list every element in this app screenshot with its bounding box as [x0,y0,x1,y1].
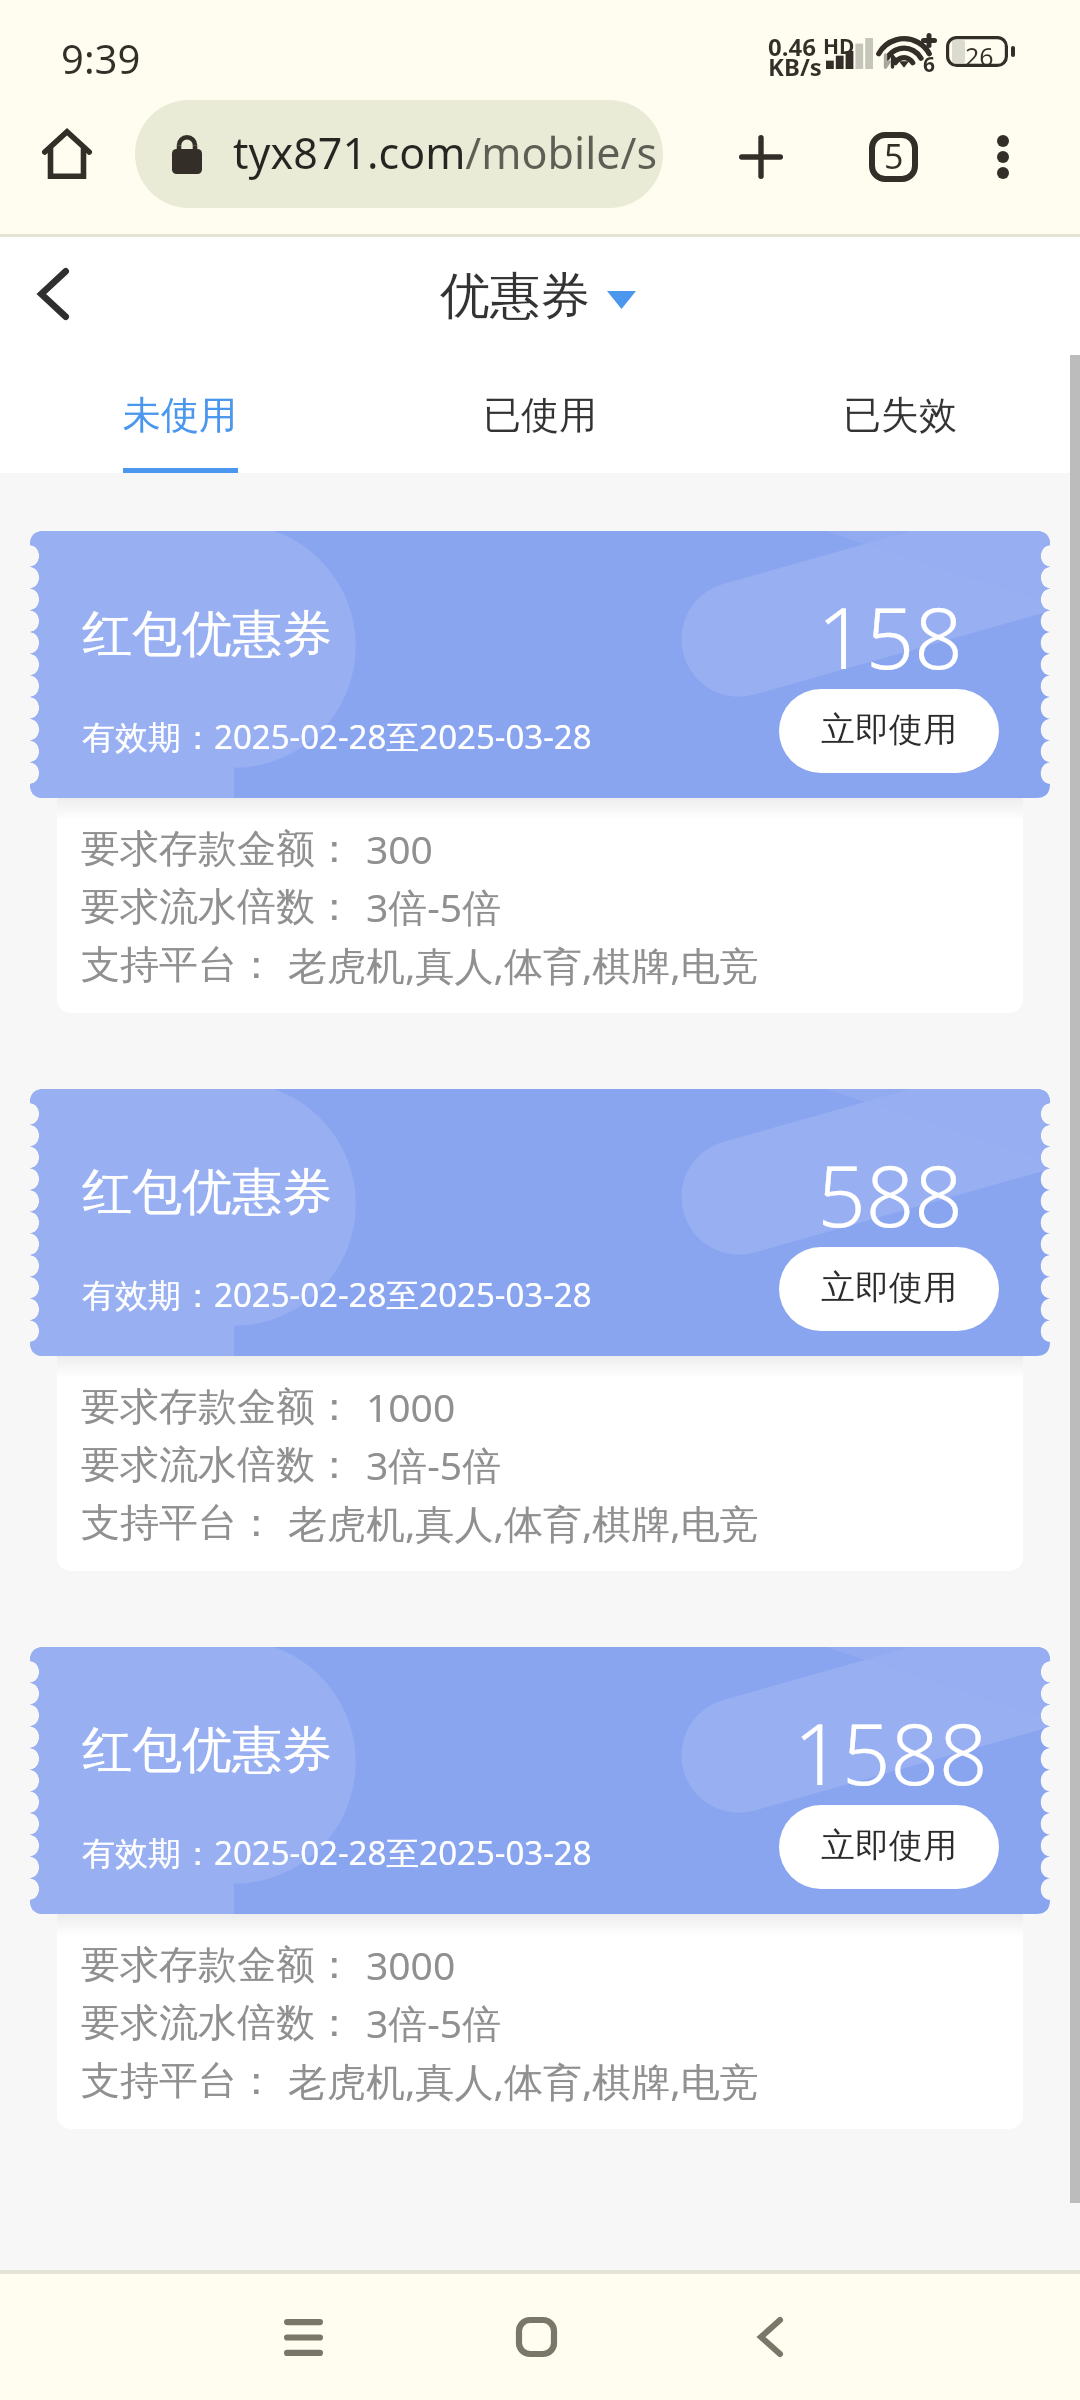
staticText: HD [823,32,855,61]
button[interactable]: 立即使用 [779,689,999,773]
staticText: 要求存款金额： [81,1940,354,1989]
button[interactable]: Change coupon type [592,265,650,335]
button[interactable]: 要求存款金额： [57,798,1023,1013]
staticText: 9:39 [61,31,141,85]
button[interactable]: 已使用 [360,355,720,473]
staticText: 5 [884,133,904,179]
staticText: KB/s [768,50,822,83]
staticText: 老虎机,真人,体育,棋牌,电竞 [288,1496,759,1549]
button[interactable]: 要求存款金额： [57,1914,1023,2129]
button[interactable]: More options [949,103,1057,211]
staticText: 优惠券 [440,265,590,328]
staticText: 要求流水倍数： [81,882,354,931]
button[interactable]: 未使用 [0,355,360,473]
staticText: 要求存款金额： [81,1382,354,1431]
staticText: 0.46 [768,30,816,63]
staticText: 要求流水倍数： [81,1998,354,2047]
staticText: 3倍-5倍 [366,1438,502,1491]
staticText: 158 [817,578,963,694]
staticText: 支持平台： [81,940,276,989]
button[interactable]: 立即使用 [779,1247,999,1331]
staticText: 红包优惠券 [82,603,332,666]
staticText: 已失效 [843,391,957,439]
button[interactable]: New tab [707,103,815,211]
staticText: 300 [366,822,433,875]
staticText: 1588 [793,1694,988,1810]
staticText: 有效期：2025-02-28至2025-03-28 [82,714,592,759]
staticText: 1000 [366,1380,456,1433]
button[interactable]: tyx871.com/mobile/s [135,100,663,208]
button[interactable]: Back [700,2274,840,2400]
staticText: 6 [923,50,936,79]
staticText: 3倍-5倍 [366,1996,502,2049]
staticText: 红包优惠券 [82,1719,332,1782]
staticText: 26 [965,39,994,70]
staticText: 要求流水倍数： [81,1440,354,1489]
staticText: 老虎机,真人,体育,棋牌,电竞 [288,938,759,991]
staticText: 要求存款金额： [81,824,354,873]
staticText: 红包优惠券 [82,1161,332,1224]
staticText: 有效期：2025-02-28至2025-03-28 [82,1830,592,1875]
staticText: 未使用 [123,391,237,439]
staticText: 支持平台： [81,2056,276,2105]
staticText: 支持平台： [81,1498,276,1547]
staticText: 3000 [366,1938,456,1991]
staticText: 立即使用 [821,1266,957,1309]
button[interactable]: Recent apps [233,2274,373,2400]
button[interactable]: 立即使用 [779,1805,999,1889]
staticText: 已使用 [483,391,597,439]
button[interactable]: Back [0,237,106,351]
staticText: 3倍-5倍 [366,880,502,933]
button[interactable]: Home [466,2274,606,2400]
button[interactable]: Home [22,109,112,199]
staticText: tyx871.com/mobile/s [233,123,658,182]
staticText: 588 [817,1136,963,1252]
staticText: 立即使用 [821,708,957,751]
button[interactable]: 要求存款金额： [57,1356,1023,1571]
staticText: 立即使用 [821,1824,957,1867]
button[interactable]: Tabs: 5 [839,103,947,211]
button[interactable]: 已失效 [720,355,1080,473]
staticText: 有效期：2025-02-28至2025-03-28 [82,1272,592,1317]
staticText: 老虎机,真人,体育,棋牌,电竞 [288,2054,759,2107]
